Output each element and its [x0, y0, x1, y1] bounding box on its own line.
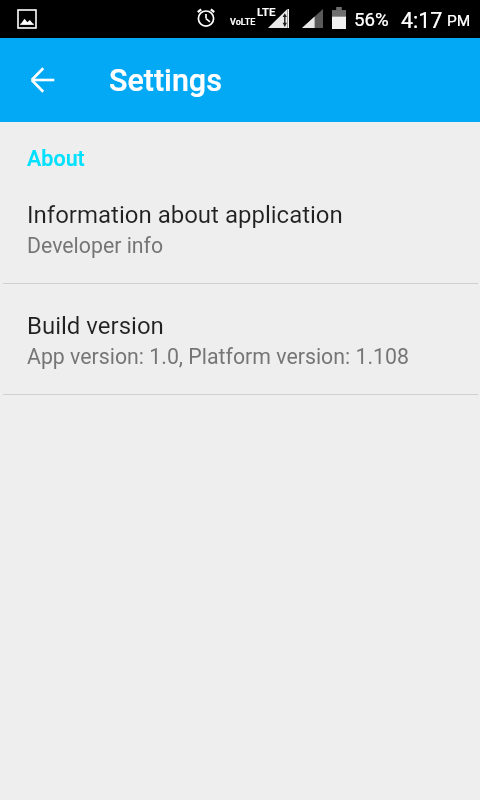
staticText: About — [27, 146, 85, 171]
staticText: Developer info — [27, 233, 164, 258]
staticText: VoLTE — [230, 17, 256, 28]
staticText: Settings — [109, 63, 222, 99]
staticText: LTE — [257, 5, 276, 18]
staticText: 56% — [354, 9, 389, 31]
staticText: App version: 1.0, Platform version: 1.10… — [27, 344, 409, 369]
staticText: Information about application — [27, 201, 343, 229]
button[interactable]: Build version — [0, 294, 480, 394]
button[interactable]: Navigate up — [19, 56, 67, 104]
button[interactable]: Information about application — [0, 183, 480, 283]
staticText: PM — [447, 12, 471, 30]
staticText: Build version — [27, 312, 164, 340]
staticText: 4:17 — [401, 8, 443, 33]
